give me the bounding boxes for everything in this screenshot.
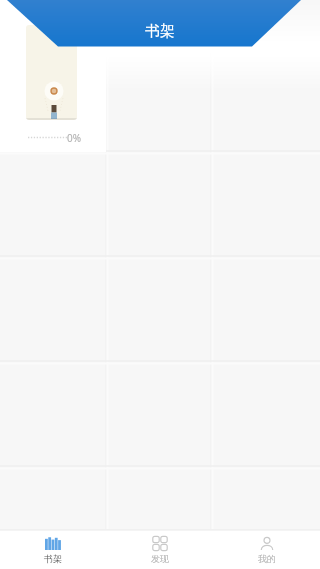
- button[interactable]: 0%: [0, 0, 106, 152]
- staticText: 书架: [44, 553, 62, 564]
- staticText: 发现: [151, 553, 169, 564]
- staticText: 我的: [258, 553, 276, 564]
- button[interactable]: 发现: [106, 530, 213, 569]
- staticText: 0%: [67, 131, 82, 145]
- staticText: 书架: [0, 22, 320, 41]
- button[interactable]: 我的: [213, 530, 320, 569]
- button[interactable]: 书架: [0, 530, 106, 569]
